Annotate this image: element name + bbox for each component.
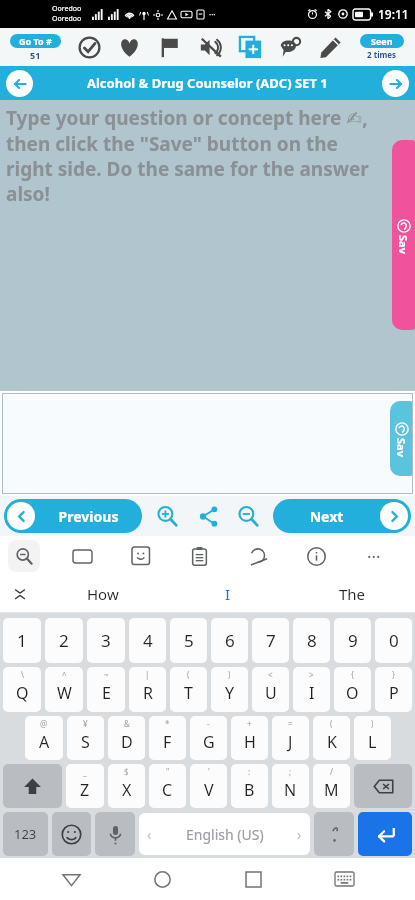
button[interactable]: Voice input bbox=[95, 812, 135, 856]
button[interactable]: Save Answer bbox=[2, 393, 413, 494]
button[interactable]: 3 bbox=[87, 618, 125, 663]
button[interactable]: Info bbox=[300, 540, 332, 572]
button[interactable]: " bbox=[149, 764, 186, 808]
button[interactable]: $ bbox=[108, 764, 145, 808]
button[interactable]: Hide keyboard bbox=[324, 859, 364, 899]
button[interactable]: ) bbox=[354, 716, 391, 760]
button[interactable]: Mark known bbox=[72, 30, 106, 64]
button[interactable]: Flag bbox=[152, 30, 186, 64]
button[interactable]: @ bbox=[25, 716, 63, 760]
button[interactable]: _ bbox=[66, 764, 104, 808]
staticText: / bbox=[330, 766, 333, 777]
button[interactable]: Mute bbox=[193, 30, 227, 64]
button[interactable]: 2 bbox=[45, 618, 83, 663]
staticText: Next bbox=[273, 507, 380, 526]
button[interactable]: * bbox=[149, 716, 186, 760]
button[interactable]: ~ bbox=[87, 667, 125, 712]
button[interactable]: { bbox=[334, 667, 371, 712]
button[interactable]: Comment bbox=[273, 30, 307, 64]
button[interactable]: Back bbox=[6, 70, 33, 97]
staticText: < bbox=[268, 669, 273, 680]
button[interactable]: Go To # bbox=[4, 34, 66, 61]
button[interactable]: Recents bbox=[233, 859, 273, 899]
button[interactable]: Expand bbox=[0, 576, 40, 612]
button[interactable]: Previous bbox=[4, 499, 142, 533]
button[interactable]: Home bbox=[142, 859, 182, 899]
button[interactable]: } bbox=[375, 667, 412, 712]
button[interactable]: Edit bbox=[313, 30, 347, 64]
button[interactable]: Emoji bbox=[52, 812, 91, 856]
button[interactable]: ; bbox=[272, 764, 309, 808]
button[interactable]: / bbox=[313, 764, 350, 808]
button[interactable]: ^ bbox=[45, 667, 83, 712]
staticText: _ bbox=[83, 766, 87, 777]
button[interactable]: 8 bbox=[293, 618, 330, 663]
staticText: 123 bbox=[14, 825, 37, 843]
staticText: Z bbox=[80, 779, 90, 801]
staticText: Seen bbox=[371, 35, 393, 47]
button[interactable]: Type your question or concept here ✍️, t… bbox=[0, 100, 415, 391]
button[interactable]: ‹ bbox=[139, 813, 310, 855]
button[interactable]: More bbox=[359, 541, 389, 571]
button[interactable]: 4 bbox=[129, 618, 166, 663]
button[interactable]: < bbox=[252, 667, 289, 712]
button[interactable]: 123 bbox=[3, 812, 48, 856]
staticText: How bbox=[87, 584, 119, 604]
staticText: R bbox=[143, 682, 153, 704]
button[interactable]: | bbox=[129, 667, 166, 712]
button[interactable]: Save Question bbox=[392, 140, 415, 330]
button[interactable]: ¥ bbox=[67, 716, 104, 760]
button[interactable]: Zoom in bbox=[151, 500, 183, 532]
staticText: Type your question or concept here ✍️, t… bbox=[6, 105, 385, 206]
button[interactable]: - bbox=[190, 716, 227, 760]
button[interactable]: \ bbox=[3, 667, 41, 712]
button[interactable]: Enter bbox=[358, 812, 412, 856]
button[interactable]: I bbox=[165, 576, 290, 612]
button[interactable]: 6 bbox=[211, 618, 248, 663]
button[interactable]: Favorite bbox=[112, 30, 146, 64]
button[interactable]: 0 bbox=[375, 618, 412, 663]
button[interactable]: 7 bbox=[252, 618, 289, 663]
button[interactable]: Sticker bbox=[125, 540, 157, 572]
button[interactable]: Forward bbox=[382, 70, 409, 97]
staticText: The bbox=[339, 584, 366, 604]
button[interactable]: + bbox=[231, 716, 268, 760]
button[interactable]: Translate bbox=[242, 540, 274, 572]
button[interactable]: Share bbox=[192, 500, 224, 532]
button[interactable]: How bbox=[40, 576, 165, 612]
button[interactable]: 1 bbox=[3, 618, 41, 663]
staticText: * bbox=[165, 718, 170, 729]
button[interactable]: 5 bbox=[170, 618, 207, 663]
button[interactable]: Search bbox=[8, 540, 40, 572]
button[interactable]: > bbox=[293, 667, 330, 712]
button[interactable]: Back bbox=[51, 859, 91, 899]
button[interactable]: 9 bbox=[334, 618, 371, 663]
staticText: Q bbox=[16, 682, 29, 704]
staticText: M bbox=[324, 779, 339, 801]
staticText: ~ bbox=[104, 669, 109, 680]
button[interactable]: ( bbox=[170, 667, 207, 712]
button[interactable]: Period bbox=[314, 812, 354, 856]
staticText: } bbox=[392, 669, 396, 680]
button[interactable]: GIF bbox=[66, 540, 98, 572]
button[interactable]: : bbox=[231, 764, 268, 808]
staticText: : bbox=[248, 766, 251, 777]
button[interactable]: = bbox=[272, 716, 309, 760]
button[interactable]: Seen bbox=[353, 34, 411, 60]
button[interactable]: Next bbox=[273, 499, 411, 533]
button[interactable]: Backspace bbox=[354, 764, 412, 808]
staticText: 8 bbox=[307, 629, 317, 652]
button[interactable]: Add card bbox=[233, 30, 267, 64]
staticText: ··· bbox=[209, 9, 216, 20]
button[interactable]: Zoom out bbox=[232, 500, 264, 532]
button[interactable]: The bbox=[290, 576, 415, 612]
button[interactable]: Shift bbox=[3, 764, 62, 808]
button[interactable]: Save Answer bbox=[390, 401, 413, 476]
staticText: ; bbox=[289, 766, 292, 777]
button[interactable]: Clipboard bbox=[183, 540, 215, 572]
button[interactable]: ( bbox=[313, 716, 350, 760]
button[interactable]: ' bbox=[190, 764, 227, 808]
button[interactable]: ) bbox=[211, 667, 248, 712]
staticText: 6 bbox=[225, 629, 235, 652]
button[interactable]: & bbox=[108, 716, 145, 760]
